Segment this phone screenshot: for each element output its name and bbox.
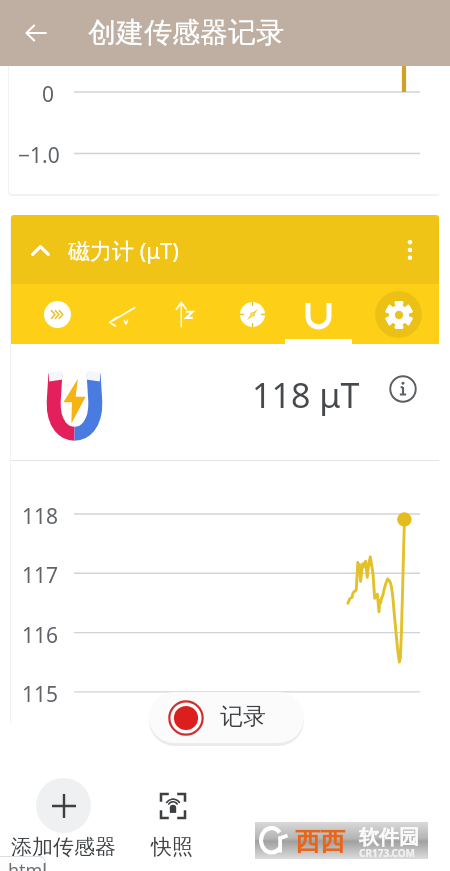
staticText: 116 [22,621,59,650]
staticText: 添加传感器 [11,834,116,860]
staticText: −1.0 [18,141,60,170]
staticText: 西西 [295,826,345,857]
staticText: -1.html [0,858,46,871]
staticText: 118 [22,502,59,531]
button[interactable]: 添加传感器 [0,778,129,860]
button[interactable]: Gravity [161,289,211,339]
button[interactable]: Info [384,370,422,408]
staticText: 记录 [220,702,266,731]
button[interactable]: Collapse [19,229,61,271]
button[interactable]: 记录 [149,692,304,743]
button[interactable]: Compass [227,289,277,339]
staticText: 117 [22,561,59,590]
staticText: 118 μT [252,372,360,418]
button[interactable]: Settings [375,291,422,338]
button[interactable]: 快照 [132,778,212,860]
button[interactable]: Gyroscope [97,289,147,339]
staticText: 0 [42,80,55,109]
button[interactable]: Accelerometer [32,289,82,339]
staticText: 创建传感器记录 [88,15,284,50]
button[interactable]: More options [389,229,431,271]
staticText: CR173.COM [359,846,416,860]
staticText: 快照 [151,834,193,860]
button[interactable]: Back [12,9,60,57]
staticText: 115 [22,680,59,709]
staticText: 磁力计 (μT) [68,235,179,265]
button[interactable]: Magnetometer [293,289,343,339]
staticText: 软件园 [359,825,419,850]
